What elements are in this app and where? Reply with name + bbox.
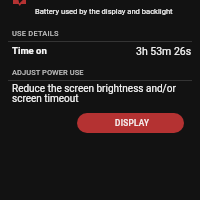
staticText: Battery used by the display and backligh… xyxy=(35,7,173,16)
button[interactable]: Time on xyxy=(0,44,200,57)
staticText: USE DETAILS xyxy=(12,29,59,38)
other: Battery usage icon xyxy=(13,0,26,6)
staticText: Reduce the screen brightness and/or scre… xyxy=(12,83,194,105)
staticText: ADJUST POWER USE xyxy=(12,68,84,77)
staticText: 3h 53m 26s xyxy=(136,45,192,57)
staticText: DISPLAY xyxy=(115,118,150,128)
button[interactable]: Reduce the screen brightness and/or scre… xyxy=(0,82,200,108)
staticText: Time on xyxy=(12,45,47,56)
button[interactable]: DISPLAY xyxy=(77,113,184,133)
